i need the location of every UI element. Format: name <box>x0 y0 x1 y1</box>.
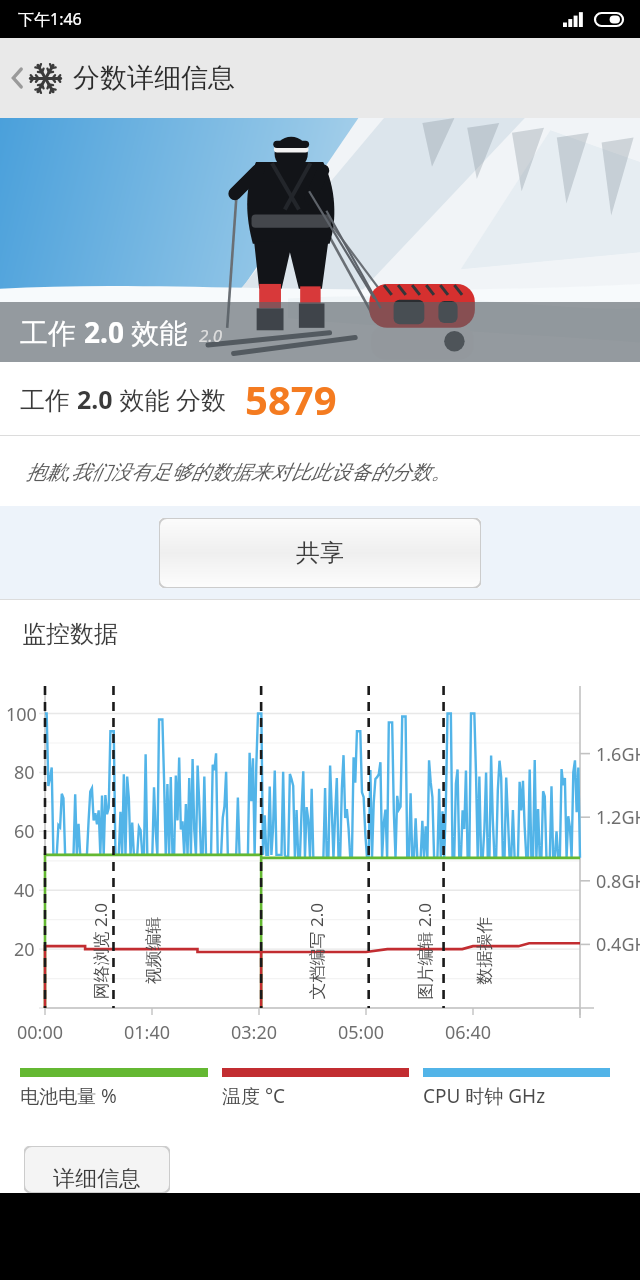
staticText: 05:00 <box>338 1020 385 1045</box>
staticText: 20 <box>14 937 35 962</box>
other: App logo <box>29 62 62 95</box>
staticText: 1.6GHz <box>596 742 640 767</box>
staticText: 03:20 <box>231 1020 278 1045</box>
staticText: 0.4GHz <box>596 932 640 957</box>
staticText: 1.2GHz <box>596 805 640 830</box>
staticText: 80 <box>14 760 35 785</box>
staticText: 数据操作 <box>473 916 494 984</box>
staticText: 图片编辑 2.0 <box>412 902 434 999</box>
staticText: 5879 <box>245 372 337 426</box>
other: Battery <box>594 12 624 27</box>
staticText: 抱歉,我们没有足够的数据来对比此设备的分数。 <box>26 458 452 485</box>
staticText: 40 <box>14 878 35 903</box>
staticText: 2.0 <box>77 382 113 416</box>
staticText: 60 <box>14 819 35 844</box>
other: Back <box>10 64 24 92</box>
staticText: 2.0 <box>84 313 124 351</box>
staticText: 共享 <box>296 538 344 568</box>
staticText: 工作 <box>20 313 84 351</box>
staticText: 06:40 <box>445 1020 492 1045</box>
button[interactable]: 详细信息 <box>24 1146 170 1193</box>
staticText: 分数详细信息 <box>73 61 235 95</box>
button[interactable]: Back <box>0 51 251 105</box>
staticText: 监控数据 <box>22 619 118 649</box>
staticText: 01:40 <box>124 1020 171 1045</box>
staticText: 下午1:46 <box>18 8 82 30</box>
staticText: 详细信息 <box>53 1165 141 1193</box>
staticText: 工作 <box>20 382 77 416</box>
staticText: 00:00 <box>17 1020 64 1045</box>
staticText: 0.8GHz <box>596 869 640 894</box>
staticText: 视频编辑 <box>142 916 163 984</box>
staticText: 2.0 <box>199 324 223 347</box>
staticText: 网络浏览 2.0 <box>88 902 110 999</box>
other: Signal <box>563 12 585 27</box>
staticText: 温度 °C <box>222 1083 286 1109</box>
staticText: CPU 时钟 GHz <box>423 1083 546 1109</box>
staticText: 效能 分数 <box>113 382 227 416</box>
staticText: 电池电量 % <box>20 1083 117 1109</box>
button[interactable]: 共享 <box>159 518 481 588</box>
staticText: 100 <box>6 702 37 727</box>
staticText: 效能 <box>124 313 188 351</box>
staticText: 文档编写 2.0 <box>304 902 326 999</box>
